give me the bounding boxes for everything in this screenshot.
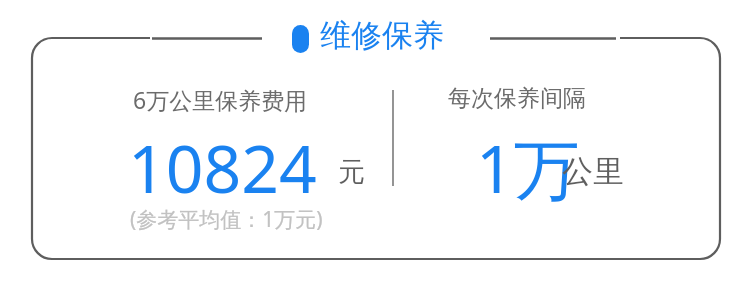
staticText: 公里	[562, 152, 624, 191]
staticText: 每次保养间隔	[448, 84, 586, 113]
staticText: 6万公里保养费用	[133, 84, 308, 115]
staticText: 10824	[128, 122, 317, 212]
staticText: (参考平均值：1万元)	[130, 205, 323, 234]
staticText: 元	[338, 155, 365, 189]
staticText: 维修保养	[320, 16, 444, 55]
staticText: 1万	[476, 122, 580, 212]
button[interactable]: 维修保养	[320, 16, 444, 55]
